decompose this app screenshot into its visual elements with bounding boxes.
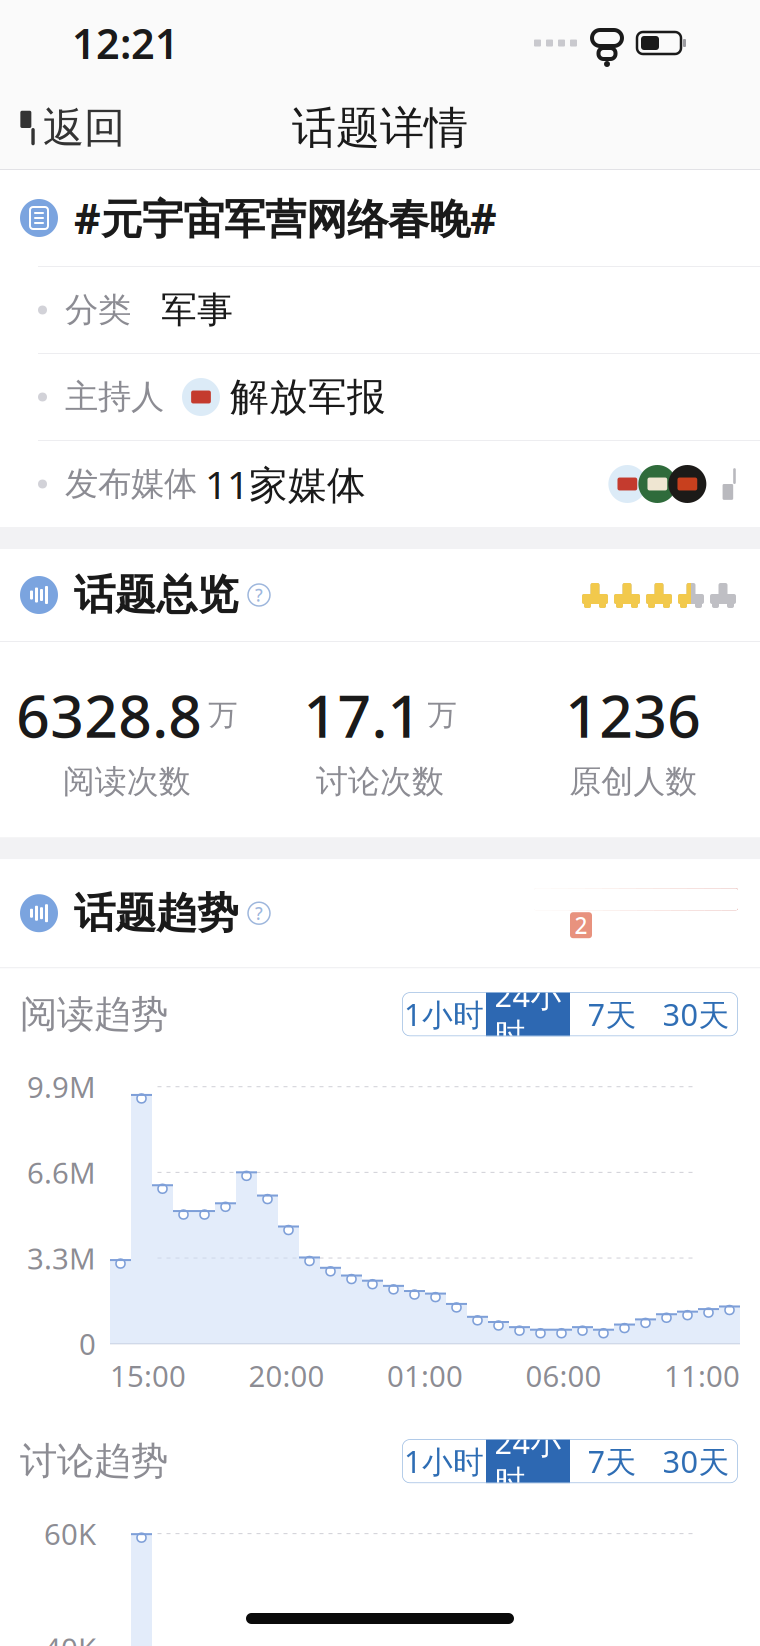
staticText: 1236 xyxy=(565,676,701,754)
staticText: 6328.8 xyxy=(16,676,202,754)
staticText: 7天 xyxy=(587,1441,636,1481)
button[interactable]: 7天 xyxy=(570,1439,654,1483)
button[interactable]: 说明 xyxy=(238,574,280,616)
button[interactable]: 1小时 xyxy=(402,1439,486,1483)
staticText: 分类 xyxy=(65,289,131,330)
staticText: 发布媒体 xyxy=(65,463,197,504)
staticText: 返回 xyxy=(43,103,125,153)
staticText: 阅读趋势 xyxy=(20,991,168,1037)
button[interactable]: 24小时 xyxy=(486,1439,570,1483)
button[interactable]: 返回 xyxy=(0,91,147,165)
staticText: 讨论次数 xyxy=(316,762,444,801)
staticText: 1小时 xyxy=(404,994,484,1034)
staticText: 万 xyxy=(208,697,237,733)
staticText: 6.6M xyxy=(27,1153,96,1192)
staticText: 2 xyxy=(574,910,587,940)
staticText: 9.9M xyxy=(27,1067,96,1106)
staticText: 话题趋势 xyxy=(74,888,238,939)
staticText: 20:00 xyxy=(248,1356,324,1395)
staticText: 12:21 xyxy=(72,16,179,70)
button[interactable]: 7天 xyxy=(570,992,654,1036)
staticText: 11家媒体 xyxy=(205,458,366,510)
staticText: 万 xyxy=(427,697,456,733)
button[interactable]: 30天 xyxy=(654,1439,738,1483)
button[interactable]: 24小时 xyxy=(486,992,570,1036)
staticText: 30天 xyxy=(662,1441,729,1481)
button[interactable]: 30天 xyxy=(654,992,738,1036)
button[interactable]: 发布媒体 xyxy=(0,441,760,527)
staticText: 40K xyxy=(44,1629,96,1646)
staticText: #元宇宙军营网络春晚# xyxy=(74,191,497,245)
staticText: 3.3M xyxy=(27,1239,96,1278)
staticText: 01:00 xyxy=(387,1356,463,1395)
staticText: 1小时 xyxy=(404,1441,484,1481)
staticText: 解放军报 xyxy=(230,373,386,421)
staticText: 24小时 xyxy=(494,1422,561,1500)
staticText: ? xyxy=(255,583,263,606)
staticText: 7天 xyxy=(587,994,636,1034)
staticText: 0 xyxy=(79,1324,96,1363)
staticText: 话题详情 xyxy=(292,101,468,155)
staticText: 11:00 xyxy=(664,1356,740,1395)
staticText: ? xyxy=(255,902,263,925)
staticText: 原创人数 xyxy=(569,762,697,801)
staticText: 讨论趋势 xyxy=(20,1438,168,1484)
staticText: 阅读次数 xyxy=(63,762,191,801)
staticText: 军事 xyxy=(161,288,233,332)
staticText: 30天 xyxy=(662,994,729,1034)
staticText: 17.1 xyxy=(303,676,421,754)
button[interactable]: 1小时 xyxy=(402,992,486,1036)
button[interactable]: 说明 xyxy=(238,892,280,934)
staticText: 24小时 xyxy=(494,975,561,1053)
staticText: 15:00 xyxy=(110,1356,186,1395)
staticText: 06:00 xyxy=(525,1356,601,1395)
staticText: 话题总览 xyxy=(74,570,238,620)
staticText: 主持人 xyxy=(65,376,164,417)
staticText: 60K xyxy=(44,1514,96,1553)
